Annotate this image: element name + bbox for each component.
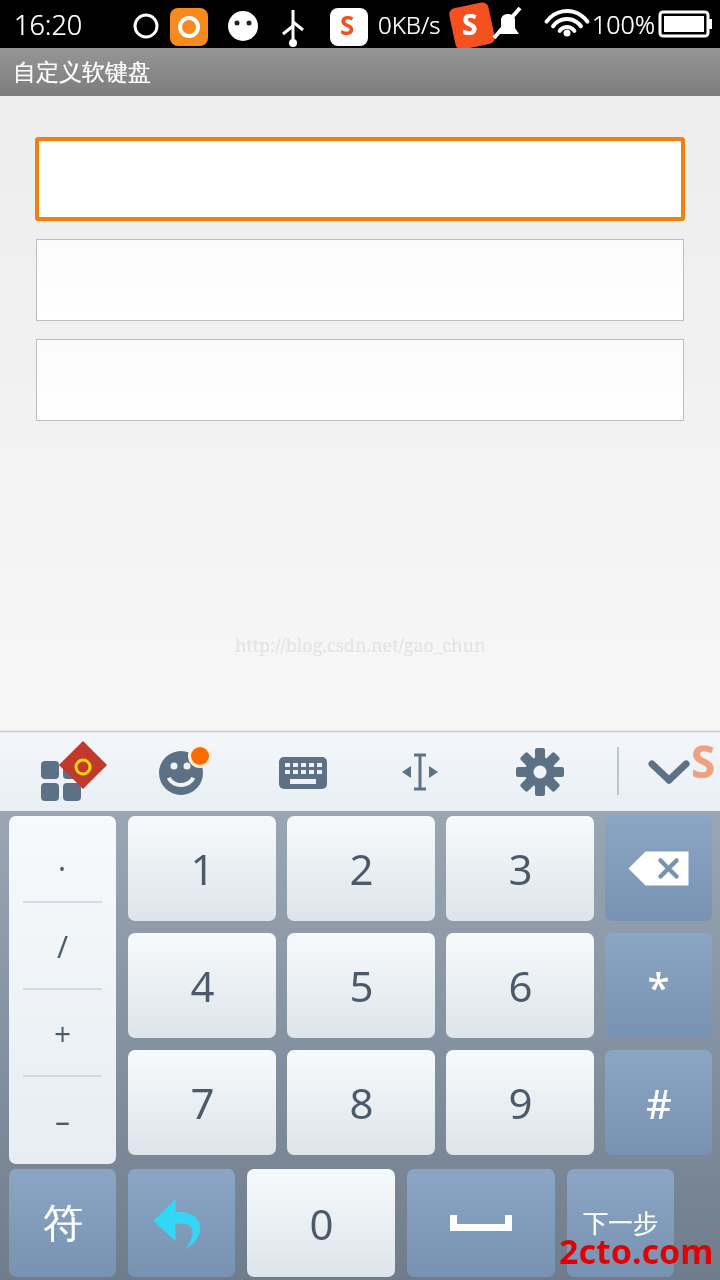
button[interactable]: Hide keyboard xyxy=(640,742,698,800)
staticText: 16:20 xyxy=(14,6,83,43)
button[interactable]: Return xyxy=(128,1169,235,1277)
button[interactable]: 5 xyxy=(287,933,435,1038)
staticText: . xyxy=(58,839,67,880)
button[interactable]: Delete xyxy=(605,816,712,921)
staticText: 100% xyxy=(592,7,656,41)
button[interactable]: 1 xyxy=(128,816,276,921)
button[interactable]: 9 xyxy=(446,1050,594,1155)
button[interactable] xyxy=(36,339,684,421)
button[interactable]: Switch keyboard xyxy=(275,743,331,799)
button[interactable]: 3 xyxy=(446,816,594,921)
button[interactable]: . xyxy=(9,816,116,1164)
button[interactable]: 0 xyxy=(247,1169,395,1277)
staticText: 4 xyxy=(190,957,215,1014)
staticText: * xyxy=(647,959,670,1013)
button[interactable]: 7 xyxy=(128,1050,276,1155)
button[interactable]: 下一步 xyxy=(567,1169,674,1277)
button[interactable] xyxy=(36,239,684,321)
staticText: 7 xyxy=(190,1074,215,1131)
button[interactable]: 2 xyxy=(287,816,435,921)
staticText: 6 xyxy=(508,957,533,1014)
button[interactable]: Emoji xyxy=(155,743,211,799)
button[interactable]: 8 xyxy=(287,1050,435,1155)
staticText: 下一步 xyxy=(583,1208,658,1239)
staticText: S xyxy=(340,7,355,42)
staticText: – xyxy=(55,1100,70,1141)
staticText: 3 xyxy=(508,840,533,897)
staticText: S xyxy=(462,5,478,43)
button[interactable]: Themes xyxy=(33,743,89,799)
staticText: + xyxy=(54,1013,72,1054)
staticText: 符 xyxy=(43,1198,83,1248)
staticText: 2cto.com xyxy=(559,1228,714,1274)
button[interactable]: 4 xyxy=(128,933,276,1038)
staticText: 自定义软键盘 xyxy=(13,58,151,87)
button[interactable]: * xyxy=(605,933,712,1038)
staticText: S xyxy=(691,731,716,791)
button[interactable]: Settings xyxy=(512,743,568,799)
button[interactable]: Move cursor xyxy=(392,743,448,799)
button[interactable]: # xyxy=(605,1050,712,1155)
staticText: 5 xyxy=(349,957,374,1014)
button[interactable]: 自定义软键盘 xyxy=(0,48,720,96)
staticText: 0 xyxy=(309,1195,334,1252)
button[interactable]: 6 xyxy=(446,933,594,1038)
staticText: / xyxy=(57,926,69,967)
staticText: 9 xyxy=(508,1074,533,1131)
staticText: 8 xyxy=(349,1074,374,1131)
staticText: 0KB/s xyxy=(378,8,441,41)
staticText: # xyxy=(646,1076,672,1130)
button[interactable]: Space xyxy=(407,1169,555,1277)
staticText: 1 xyxy=(190,840,215,897)
staticText: 2 xyxy=(349,840,374,897)
staticText: http://blog.csdn.net/gao_chun xyxy=(235,633,486,658)
button[interactable]: 符 xyxy=(9,1169,116,1277)
button[interactable] xyxy=(35,137,685,221)
